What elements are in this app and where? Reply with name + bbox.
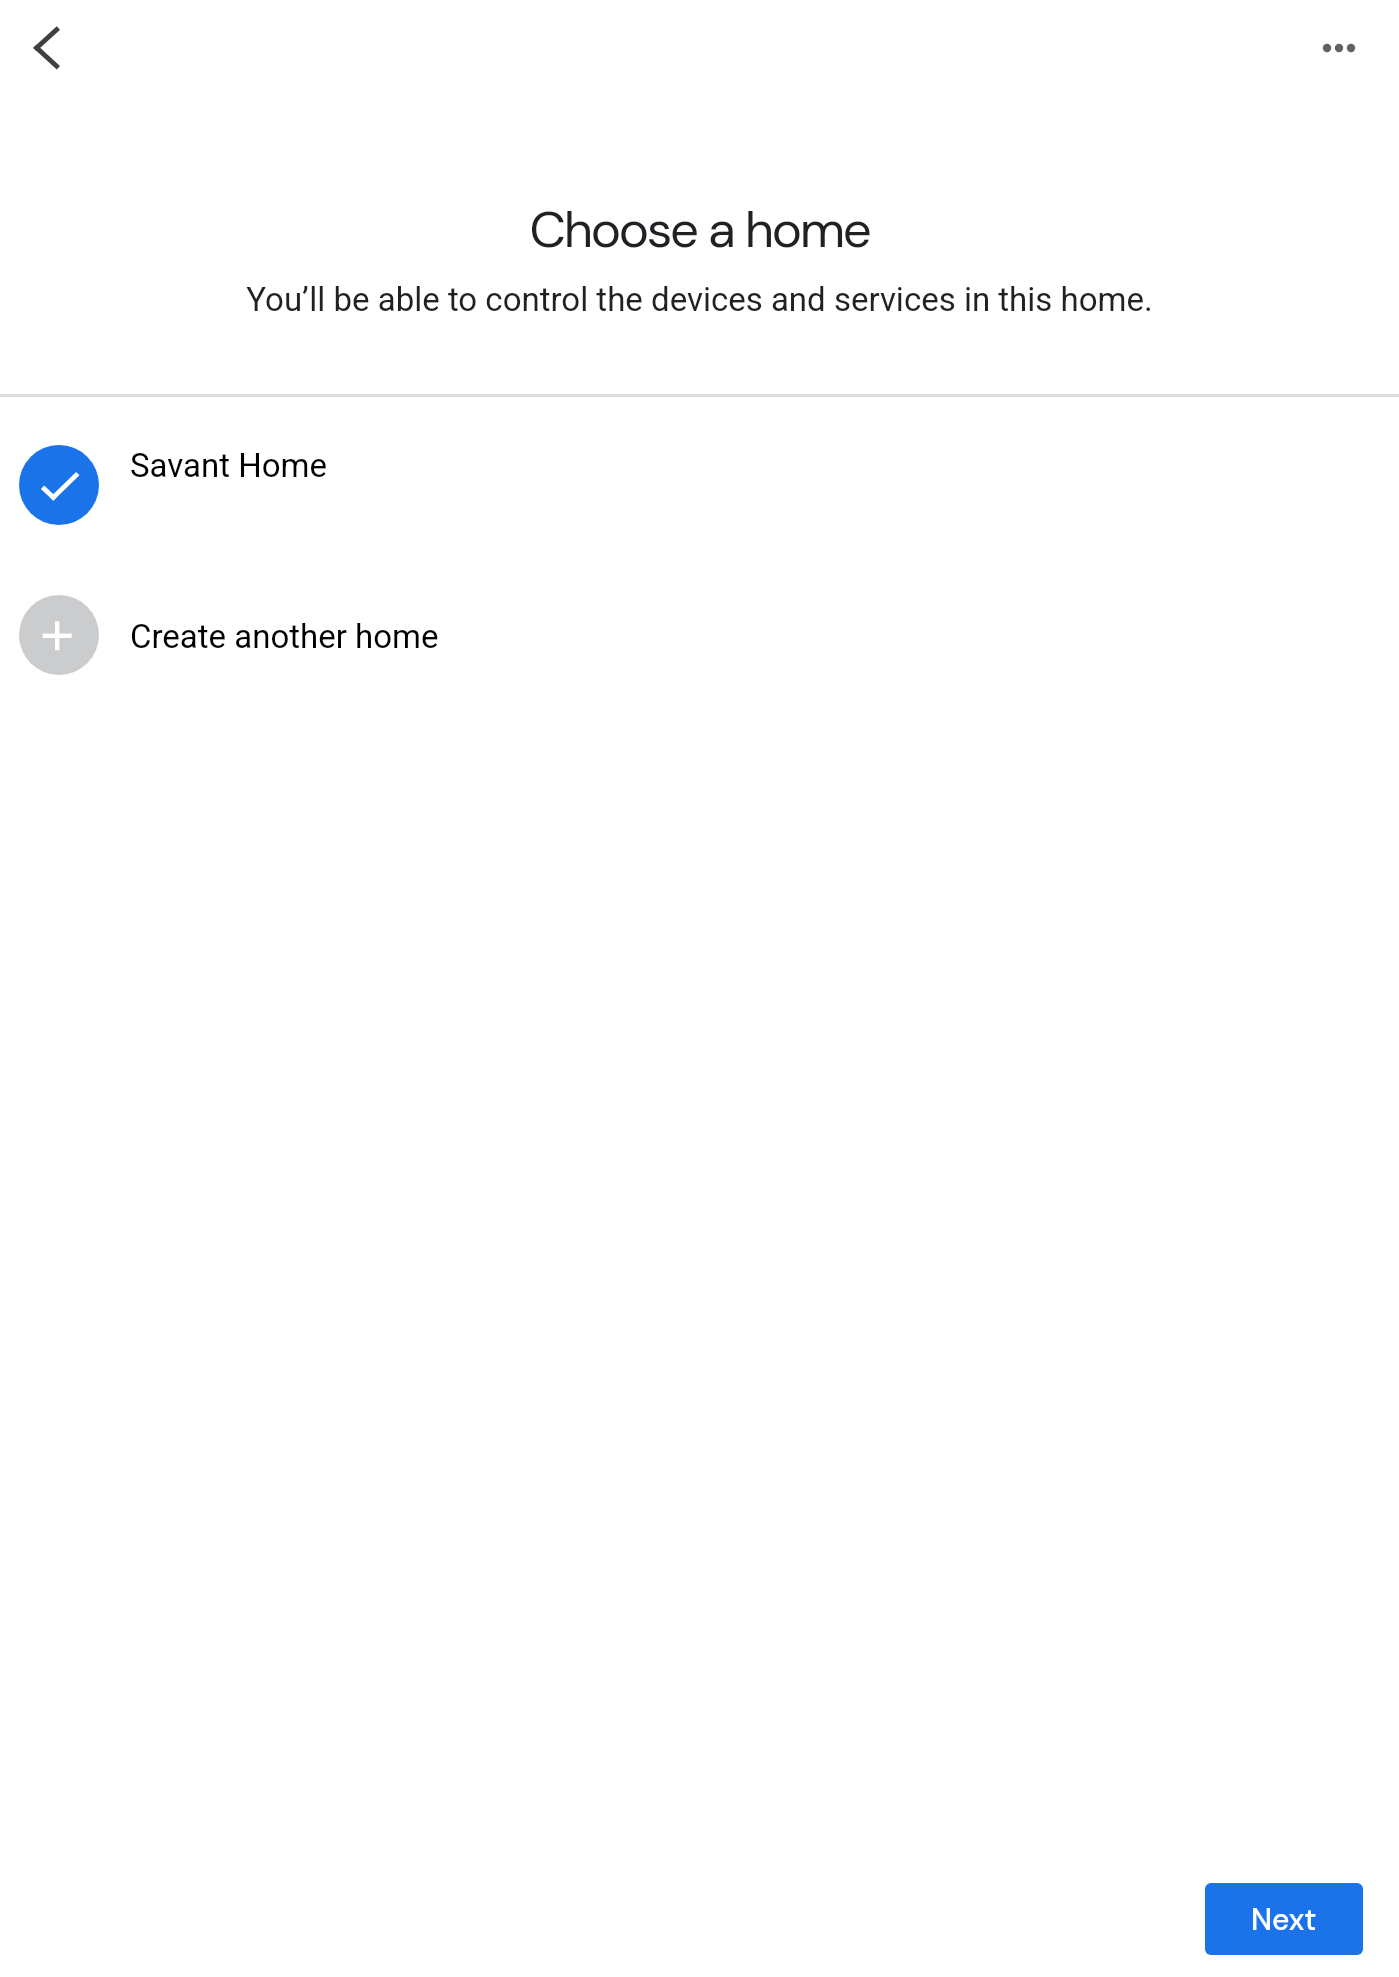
button[interactable]: Savant Home xyxy=(0,410,1399,560)
staticText: Savant Home xyxy=(130,446,328,485)
button[interactable]: More options xyxy=(1303,0,1399,96)
staticText: You’ll be able to control the devices an… xyxy=(0,280,1399,319)
button[interactable]: Navigate up xyxy=(0,0,96,96)
staticText: Next xyxy=(1251,1900,1317,1939)
button[interactable]: Next xyxy=(1205,1883,1363,1955)
staticText: Choose a home xyxy=(0,196,1399,262)
button[interactable]: Create another home xyxy=(0,560,1399,710)
staticText: Create another home xyxy=(130,617,439,656)
